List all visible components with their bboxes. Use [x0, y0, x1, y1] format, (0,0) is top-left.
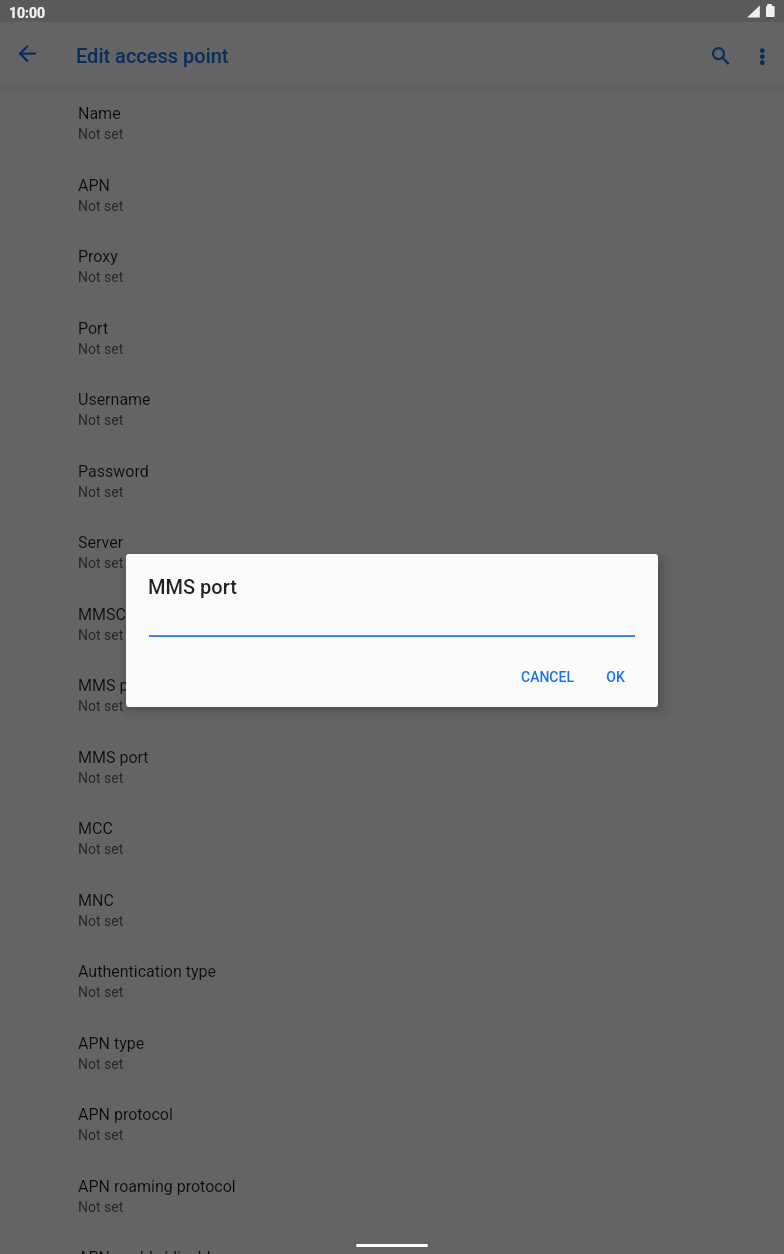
button[interactable]: MMS proxy	[0, 659, 784, 731]
button[interactable]: APN enable/disable	[0, 1231, 784, 1254]
button[interactable]: MNC	[0, 874, 784, 946]
button[interactable]: Port	[0, 302, 784, 374]
staticText: Not set	[78, 841, 124, 857]
button[interactable]: APN type	[0, 1017, 784, 1089]
staticText: Not set	[78, 412, 124, 428]
staticText: Not set	[78, 484, 124, 500]
button[interactable]: Search	[696, 30, 744, 78]
staticText: Server	[78, 533, 124, 552]
button[interactable]: Username	[0, 373, 784, 445]
button[interactable]: Authentication type	[0, 945, 784, 1017]
button[interactable]: Navigate up	[4, 30, 52, 78]
staticText: APN type	[78, 1034, 145, 1053]
staticText: Not set	[78, 1127, 124, 1143]
button[interactable]: Password	[0, 445, 784, 517]
staticText: Proxy	[78, 247, 118, 266]
staticText: Not set	[78, 126, 124, 142]
staticText: 10:00	[9, 5, 46, 21]
staticText: MMS port	[78, 748, 149, 767]
button[interactable]: More options	[738, 30, 784, 78]
staticText: Edit access point	[76, 44, 229, 67]
button[interactable]: MMS port	[0, 731, 784, 803]
staticText: MMS proxy	[78, 676, 159, 695]
staticText: Not set	[78, 555, 124, 571]
staticText: Authentication type	[78, 962, 217, 981]
staticText: Not set	[78, 698, 124, 714]
button[interactable]: APN roaming protocol	[0, 1160, 784, 1232]
staticText: Password	[78, 462, 149, 481]
button[interactable]: Name	[0, 87, 784, 159]
staticText: Not set	[78, 913, 124, 929]
staticText: Username	[78, 390, 151, 409]
staticText: Name	[78, 104, 121, 123]
button[interactable]: Proxy	[0, 230, 784, 302]
button[interactable]: Server	[0, 516, 784, 588]
staticText: OK	[606, 669, 625, 685]
button[interactable]: MCC	[0, 802, 784, 874]
staticText: Not set	[78, 269, 124, 285]
staticText: Not set	[78, 770, 124, 786]
staticText: MNC	[78, 891, 114, 910]
button[interactable]: OK	[600, 659, 631, 695]
staticText: CANCEL	[521, 669, 574, 685]
staticText: MCC	[78, 819, 113, 838]
button[interactable]: CANCEL	[515, 659, 579, 695]
button[interactable]: APN protocol	[0, 1088, 784, 1160]
staticText: APN	[78, 176, 110, 195]
staticText: Port	[78, 319, 109, 338]
staticText: Not set	[78, 198, 124, 214]
staticText: Not set	[78, 984, 124, 1000]
button[interactable]: Dismiss dialog	[0, 0, 784, 1254]
staticText: APN roaming protocol	[78, 1177, 236, 1196]
staticText: Not set	[78, 1199, 124, 1215]
staticText: APN protocol	[78, 1105, 173, 1124]
button[interactable]: MMSC	[0, 588, 784, 660]
button[interactable]: APN	[0, 159, 784, 231]
staticText: MMS port	[148, 575, 237, 598]
staticText: APN enable/disable	[78, 1248, 220, 1254]
staticText: Not set	[78, 1056, 124, 1072]
staticText: Not set	[78, 341, 124, 357]
staticText: Not set	[78, 627, 124, 643]
staticText: MMSC	[78, 605, 126, 624]
